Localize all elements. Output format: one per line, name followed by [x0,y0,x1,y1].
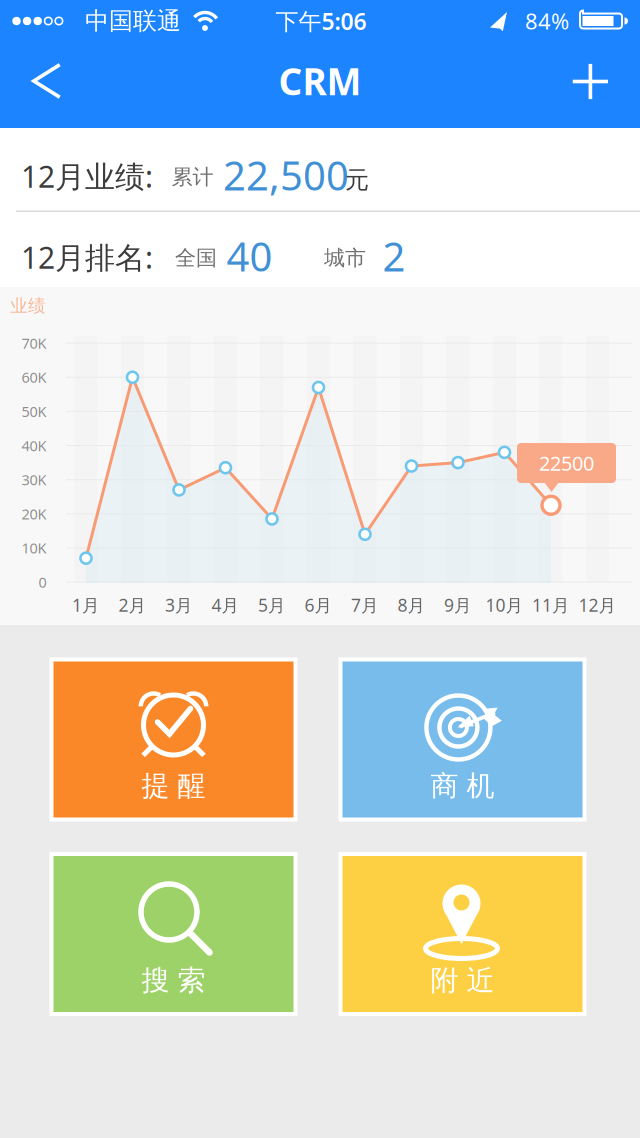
staticText: 60K [21,367,46,387]
staticText: 3月 [165,593,193,617]
button[interactable]: 提醒 [49,657,297,821]
staticText: 8月 [397,593,425,617]
staticText: 提 醒 [141,768,205,804]
staticText: 9月 [444,593,472,617]
button[interactable]: 附近 [338,852,586,1016]
staticText: 4月 [211,593,239,617]
staticText: CRM [278,56,361,106]
staticText: 84% [525,6,569,36]
staticText: 2 [382,229,405,283]
staticText: 2月 [118,593,146,617]
staticText: 10月 [485,593,523,617]
staticText: 附 近 [430,963,494,998]
button[interactable]: 搜索 [49,852,297,1016]
staticText: 11月 [532,593,570,617]
staticText: 50K [21,401,46,421]
button[interactable]: Add [0,0,96,128]
button[interactable]: 商机 [338,657,586,821]
staticText: 12月 [578,593,616,617]
staticText: 70K [21,333,46,353]
staticText: 30K [21,470,46,489]
staticText: 0 [38,572,46,592]
staticText: 商 机 [430,768,494,804]
staticText: 10K [21,538,46,558]
staticText: 1月 [72,593,100,617]
staticText: 6月 [304,593,332,617]
staticText: 元 [345,165,369,195]
staticText: 下午5:06 [275,5,366,37]
staticText: 全国 [175,245,217,271]
button[interactable]: Back [0,0,88,128]
staticText: 20K [21,504,46,524]
staticText: 40 [226,229,272,283]
staticText: 40K [21,436,46,455]
staticText: 12月排名: [21,237,153,277]
staticText: 22,500 [223,148,349,202]
staticText: 12月业绩: [21,156,153,196]
staticText: 7月 [351,593,379,617]
staticText: 22500 [539,449,594,477]
staticText: 业绩 [10,295,46,317]
staticText: 中国联通 [85,6,181,36]
staticText: 累计 [171,164,213,190]
staticText: 城市 [324,245,366,271]
staticText: 搜 索 [141,963,205,998]
staticText: 5月 [258,593,286,617]
